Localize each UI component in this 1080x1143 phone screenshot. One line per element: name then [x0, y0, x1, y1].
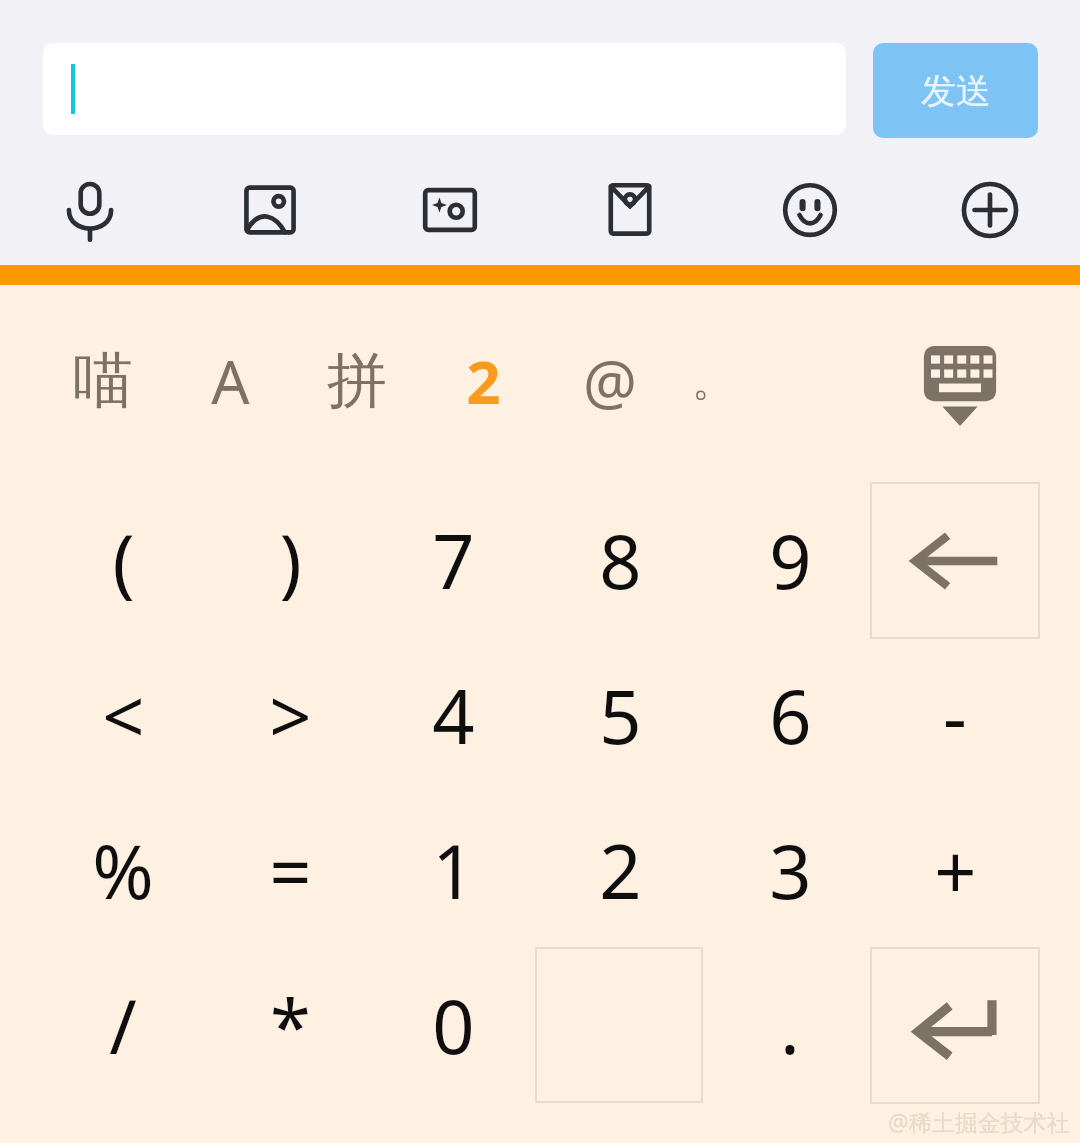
button[interactable]: 2	[421, 322, 545, 440]
button[interactable]: 。	[651, 322, 775, 440]
button[interactable]: +	[875, 792, 1035, 948]
button[interactable]: 1	[373, 792, 533, 948]
button[interactable]: 8	[540, 482, 700, 638]
button[interactable]: Backspace	[870, 482, 1040, 639]
staticText: .	[780, 975, 800, 1076]
button[interactable]: 喵	[41, 322, 165, 440]
staticText: >	[269, 665, 312, 766]
staticText: =	[269, 820, 312, 921]
staticText: 喵	[73, 343, 133, 419]
button[interactable]: )	[210, 482, 370, 638]
staticText: 2	[599, 820, 642, 921]
staticText: A	[211, 340, 250, 422]
staticText: %	[92, 820, 154, 921]
button[interactable]: Sticker	[404, 164, 496, 256]
staticText: <	[102, 665, 145, 766]
button[interactable]: Enter	[870, 947, 1040, 1104]
button[interactable]: 0	[373, 947, 533, 1103]
button[interactable]: Photo	[224, 164, 316, 256]
button[interactable]: 4	[373, 637, 533, 793]
staticText: -	[943, 665, 967, 766]
button[interactable]: /	[43, 947, 203, 1103]
button[interactable]: A	[168, 322, 292, 440]
button[interactable]: <	[43, 637, 203, 793]
staticText: (	[112, 510, 135, 611]
staticText: 0	[432, 975, 475, 1076]
staticText: @	[583, 340, 637, 422]
button[interactable]: 7	[373, 482, 533, 638]
staticText: 3	[769, 820, 812, 921]
staticText: 7	[432, 510, 475, 611]
button[interactable]: 9	[710, 482, 870, 638]
button[interactable]: 拼	[295, 322, 419, 440]
button[interactable]	[43, 43, 846, 135]
staticText: /	[109, 975, 137, 1076]
button[interactable]: 2	[540, 792, 700, 948]
staticText: 6	[769, 665, 812, 766]
staticText: *	[270, 975, 311, 1076]
staticText: 。	[692, 355, 734, 408]
button[interactable]: Voice message	[44, 164, 136, 256]
button[interactable]: Red packet	[584, 164, 676, 256]
button[interactable]: 3	[710, 792, 870, 948]
staticText: )	[279, 510, 302, 611]
button[interactable]: 6	[710, 637, 870, 793]
button[interactable]: @	[548, 322, 672, 440]
button[interactable]: -	[875, 637, 1035, 793]
button[interactable]: 5	[540, 637, 700, 793]
staticText: 5	[599, 665, 642, 766]
button[interactable]: (	[43, 482, 203, 638]
staticText: @稀土掘金技术社区	[888, 1106, 1074, 1140]
staticText: +	[934, 820, 977, 921]
staticText: 8	[599, 510, 642, 611]
button[interactable]: =	[210, 792, 370, 948]
button[interactable]: .	[710, 947, 870, 1103]
staticText: 2	[466, 340, 501, 422]
staticText: 4	[432, 665, 475, 766]
button[interactable]: *	[210, 947, 370, 1103]
button[interactable]: Emoji	[764, 164, 856, 256]
button[interactable]: %	[43, 792, 203, 948]
staticText: 1	[432, 820, 475, 921]
button[interactable]: Hide keyboard	[898, 332, 1022, 440]
button[interactable]: Space	[535, 947, 703, 1103]
button[interactable]: More	[944, 164, 1036, 256]
staticText: 拼	[327, 343, 387, 419]
staticText: 9	[769, 510, 812, 611]
button[interactable]: 发送	[873, 43, 1038, 138]
button[interactable]: >	[210, 637, 370, 793]
staticText: 发送	[921, 69, 991, 113]
